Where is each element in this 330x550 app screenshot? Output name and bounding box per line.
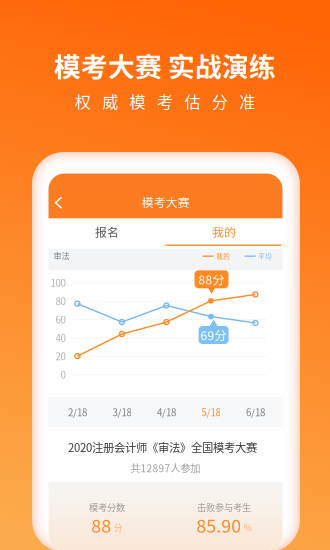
staticText: 模考大赛 xyxy=(142,193,190,210)
staticText: 报名 xyxy=(95,223,119,240)
staticText: 共12897人参加 xyxy=(130,461,200,475)
staticText: % xyxy=(244,521,252,534)
staticText: 69分 xyxy=(201,326,227,344)
staticText: 100 xyxy=(50,275,65,290)
staticText: 考 xyxy=(157,89,173,113)
staticText: 3/18 xyxy=(112,405,131,419)
staticText: 6/18 xyxy=(246,405,265,419)
staticText: 85.90 xyxy=(196,512,241,538)
staticText: 88分 xyxy=(198,271,224,288)
staticText: 80 xyxy=(55,294,65,308)
staticText: 88 xyxy=(91,512,111,538)
staticText: 权 xyxy=(75,89,91,113)
staticText: 模考分数 xyxy=(89,500,125,514)
staticText: 4/18 xyxy=(157,405,176,419)
button[interactable]: 我的 xyxy=(165,218,282,248)
staticText: 威 xyxy=(102,89,118,113)
staticText: 审法 xyxy=(53,250,69,261)
staticText: 我的 xyxy=(212,223,236,240)
staticText: 40 xyxy=(55,331,65,345)
staticText: 模 xyxy=(130,89,146,113)
staticText: 击败参与考生 xyxy=(197,500,251,514)
staticText: 我的 xyxy=(216,251,230,261)
staticText: 2/18 xyxy=(68,405,87,419)
staticText: 模考大赛 实战演练 xyxy=(54,46,276,84)
staticText: 平均 xyxy=(258,251,272,261)
staticText: 0 xyxy=(60,367,65,382)
button[interactable]: Back xyxy=(48,173,74,218)
staticText: 60 xyxy=(55,312,65,326)
staticText: 2020注册会计师《审法》全国模考大赛 xyxy=(68,439,257,455)
staticText: 5/18 xyxy=(201,405,220,419)
button[interactable]: 报名 xyxy=(48,218,165,248)
staticText: 分 xyxy=(212,89,228,113)
staticText: 20 xyxy=(55,349,65,363)
staticText: 分 xyxy=(114,521,123,534)
staticText: 准 xyxy=(239,89,255,113)
staticText: 估 xyxy=(184,89,200,113)
